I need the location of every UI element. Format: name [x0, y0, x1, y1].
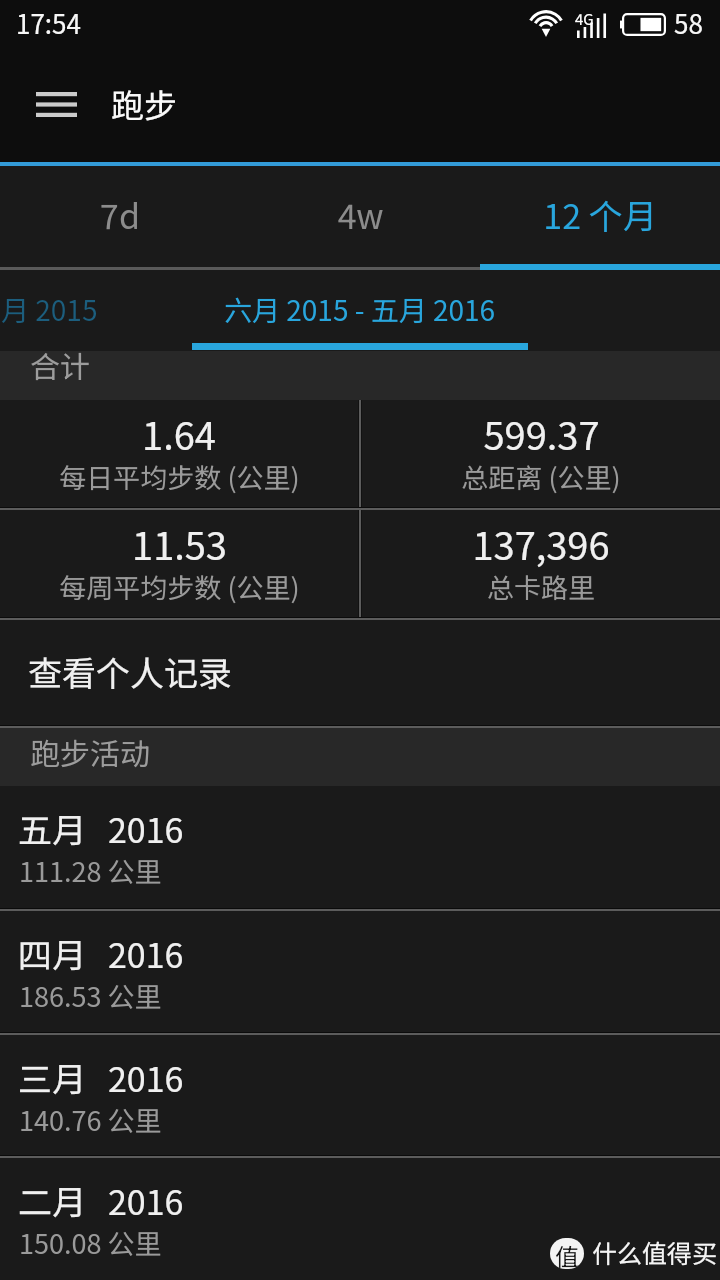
staticText: 跑步活动 [30, 730, 150, 773]
staticText: 4G [575, 8, 594, 30]
staticText: 每周平均步数 (公里) [59, 567, 300, 606]
button[interactable]: 三月 [0, 1035, 720, 1155]
staticText: 跑步 [111, 80, 177, 128]
staticText: 1.64 [142, 406, 216, 461]
staticText: 查看个人记录 [28, 647, 232, 696]
staticText: 186.53 公里 [19, 976, 162, 1015]
staticText: 四月 [18, 929, 86, 978]
staticText: 17:54 [16, 4, 81, 42]
button[interactable]: 五月 [0, 786, 720, 908]
staticText: 合计 [30, 343, 90, 386]
staticText: 150.08 公里 [19, 1223, 162, 1262]
button[interactable]: 599.37 [362, 400, 720, 507]
staticText: 每日平均步数 (公里) [59, 457, 300, 496]
button[interactable]: 12 个月 [480, 166, 720, 270]
staticText: 2016 [108, 1176, 184, 1225]
button[interactable]: 4w [240, 166, 480, 270]
staticText: 599.37 [483, 406, 600, 461]
button[interactable]: 查看个人记录 [0, 620, 720, 725]
staticText: 五月 [18, 804, 86, 853]
staticText: 三月 [18, 1053, 86, 1102]
button[interactable]: 1.64 [0, 400, 358, 507]
staticText: 总距离 (公里) [461, 457, 621, 496]
button[interactable]: 11.53 [0, 510, 358, 617]
staticText: 值 [555, 1238, 579, 1269]
staticText: 7d [100, 190, 140, 239]
staticText: 2016 [108, 1053, 184, 1102]
staticText: 六月 2015 - 五月 2016 [224, 289, 496, 330]
button[interactable]: Open navigation menu [12, 60, 100, 148]
button[interactable]: 7d [0, 166, 240, 270]
staticText: 111.28 公里 [19, 851, 162, 890]
staticText: 58 [674, 4, 703, 42]
staticText: 2016 [108, 804, 184, 853]
button[interactable]: 四月 [0, 911, 720, 1032]
staticText: 11.53 [132, 516, 227, 571]
staticText: 140.76 公里 [19, 1100, 162, 1139]
staticText: 总卡路里 [487, 567, 595, 606]
staticText: 137,396 [472, 516, 610, 571]
staticText: 4w [337, 190, 384, 239]
button[interactable]: 二月 [0, 1158, 720, 1279]
button[interactable]: 137,396 [362, 510, 720, 617]
staticText: 12 个月 [543, 190, 657, 239]
staticText: 二月 [18, 1176, 86, 1225]
staticText: 月 2015 [1, 289, 98, 330]
staticText: 2016 [108, 929, 184, 978]
staticText: 什么值得买 [592, 1234, 718, 1270]
